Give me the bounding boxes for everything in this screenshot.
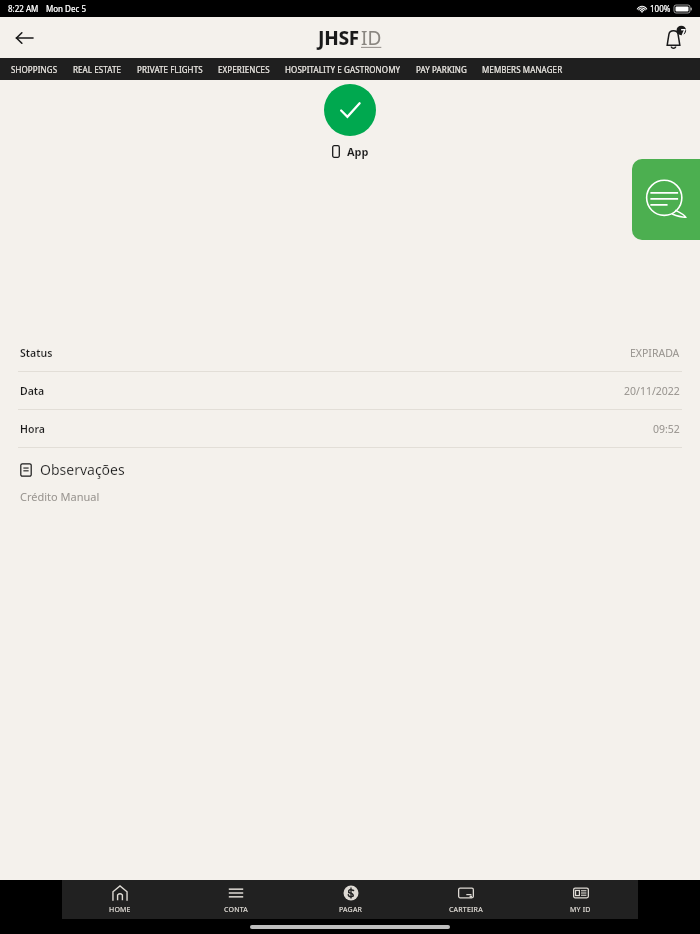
button[interactable]: CONTA bbox=[178, 880, 293, 919]
staticText: CONTA bbox=[224, 905, 248, 915]
staticText: Hora bbox=[20, 422, 45, 436]
staticText: ID bbox=[361, 25, 382, 51]
button[interactable]: Notifications bbox=[658, 21, 692, 55]
button[interactable]: PAY PARKING bbox=[412, 64, 471, 75]
staticText: 09:52 bbox=[653, 422, 680, 436]
button[interactable]: EXPERIENCES bbox=[214, 64, 274, 75]
button[interactable]: CARTEIRA bbox=[408, 880, 523, 919]
button[interactable]: HOSPITALITY E GASTRONOMY bbox=[281, 64, 405, 75]
staticText: Data bbox=[20, 384, 45, 398]
button[interactable]: HOME bbox=[62, 880, 178, 919]
staticText: Mon Dec 5 bbox=[46, 3, 86, 14]
staticText: Status bbox=[20, 346, 53, 360]
button[interactable]: Data bbox=[0, 372, 700, 410]
staticText: 100% bbox=[650, 3, 671, 14]
staticText: Observações bbox=[40, 460, 125, 479]
button[interactable]: MY ID bbox=[523, 880, 638, 919]
button[interactable]: Back bbox=[8, 22, 40, 54]
button[interactable]: Status bbox=[0, 334, 700, 372]
staticText: EXPERIENCES bbox=[218, 64, 270, 75]
staticText: 8:22 AM bbox=[8, 3, 39, 14]
button[interactable]: PAGAR bbox=[293, 880, 408, 919]
button[interactable]: MEMBERS MANAGER bbox=[478, 64, 567, 75]
staticText: REAL ESTATE bbox=[73, 64, 122, 75]
staticText: PAGAR bbox=[339, 905, 363, 915]
staticText: EXPIRADA bbox=[630, 346, 680, 360]
staticText: Crédito Manual bbox=[20, 489, 100, 504]
staticText: HOME bbox=[109, 905, 131, 915]
button[interactable]: Chat bbox=[632, 159, 700, 240]
staticText: MEMBERS MANAGER bbox=[482, 64, 563, 75]
button[interactable]: PRIVATE FLIGHTS bbox=[133, 64, 207, 75]
staticText: PRIVATE FLIGHTS bbox=[137, 64, 203, 75]
staticText: App bbox=[347, 144, 369, 159]
staticText: 20/11/2022 bbox=[624, 384, 680, 398]
staticText: MY ID bbox=[570, 905, 591, 915]
button[interactable]: SHOPPINGS bbox=[7, 64, 62, 75]
button[interactable]: REAL ESTATE bbox=[69, 64, 126, 75]
staticText: CARTEIRA bbox=[449, 905, 483, 915]
staticText: JHSF bbox=[318, 25, 359, 51]
staticText: HOSPITALITY E GASTRONOMY bbox=[285, 64, 401, 75]
staticText: PAY PARKING bbox=[416, 64, 467, 75]
staticText: SHOPPINGS bbox=[11, 64, 58, 75]
staticText: 7 bbox=[681, 26, 686, 37]
button[interactable]: Hora bbox=[0, 410, 700, 448]
